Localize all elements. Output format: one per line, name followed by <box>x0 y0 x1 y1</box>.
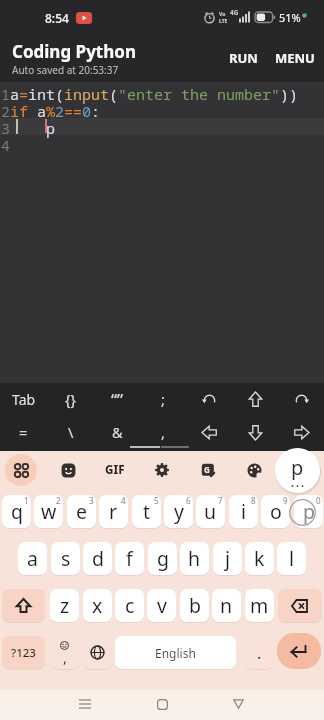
staticText: Coding Python <box>12 40 136 63</box>
staticText: 4G <box>230 8 239 17</box>
staticText: Vo <box>219 11 226 18</box>
staticText: & <box>112 422 123 442</box>
button[interactable]: t <box>132 495 161 528</box>
button[interactable]: . <box>245 636 274 669</box>
staticText: 3 <box>89 495 94 506</box>
button[interactable] <box>278 417 324 447</box>
staticText: c <box>125 592 135 619</box>
button[interactable] <box>5 454 37 486</box>
staticText: 6 <box>186 495 191 506</box>
button[interactable] <box>278 383 324 415</box>
button[interactable]: \ <box>47 417 94 447</box>
button[interactable]: RUN <box>222 46 264 70</box>
staticText: n <box>220 592 233 619</box>
button[interactable]: z <box>50 589 79 622</box>
staticText: w <box>41 498 57 525</box>
staticText: {} <box>65 389 77 409</box>
staticText: 4 <box>1 135 11 155</box>
button[interactable]: “” <box>94 383 140 415</box>
staticText: b <box>189 592 201 619</box>
staticText: s <box>61 545 71 572</box>
button[interactable]: g <box>148 542 177 575</box>
button[interactable]: n <box>212 589 241 622</box>
staticText: l <box>289 545 295 572</box>
button[interactable]: r <box>99 495 128 528</box>
button[interactable] <box>232 417 278 447</box>
button[interactable]: b <box>180 589 209 622</box>
button[interactable]: p <box>294 495 323 528</box>
staticText: u <box>204 498 217 525</box>
button[interactable]: GIF <box>100 456 130 484</box>
button[interactable]: s <box>51 542 80 575</box>
button[interactable]: x <box>83 589 112 622</box>
button[interactable] <box>148 456 176 484</box>
staticText: 1 <box>24 495 29 506</box>
button[interactable]: w <box>34 495 63 528</box>
button[interactable]: j <box>213 542 242 575</box>
button[interactable] <box>224 694 252 714</box>
button[interactable] <box>240 456 268 484</box>
staticText: “” <box>111 388 124 411</box>
button[interactable]: o <box>261 495 290 528</box>
staticText: d <box>92 545 104 572</box>
staticText: G <box>204 464 210 475</box>
button[interactable]: k <box>245 542 274 575</box>
button[interactable]: MENU <box>270 46 320 70</box>
staticText: t <box>143 498 151 525</box>
button[interactable]: {} <box>47 383 94 415</box>
button[interactable] <box>54 456 82 484</box>
button[interactable]: , <box>140 417 186 447</box>
button[interactable]: English <box>115 636 236 669</box>
button[interactable]: ?123 <box>2 636 45 669</box>
button[interactable]: i <box>229 495 258 528</box>
button[interactable]: h <box>180 542 209 575</box>
button[interactable]: l <box>277 542 306 575</box>
staticText: 51% <box>279 10 301 25</box>
button[interactable]: q <box>2 495 31 528</box>
button[interactable] <box>278 589 322 622</box>
button[interactable] <box>186 417 232 447</box>
staticText: q <box>11 498 23 525</box>
staticText: o <box>270 498 282 525</box>
button[interactable]: v <box>147 589 176 622</box>
button[interactable]: a <box>18 542 47 575</box>
button[interactable] <box>277 633 321 669</box>
staticText: a <box>27 545 38 572</box>
button[interactable]: f <box>115 542 144 575</box>
button[interactable]: y <box>164 495 193 528</box>
button[interactable]: Tab <box>0 383 47 415</box>
staticText: MENU <box>275 49 315 67</box>
button[interactable]: G <box>194 456 222 484</box>
button[interactable]: p <box>275 448 320 493</box>
button[interactable]: u <box>196 495 225 528</box>
staticText: RUN <box>229 49 258 67</box>
button[interactable]: ; <box>140 383 186 415</box>
button[interactable]: , <box>50 636 79 669</box>
button[interactable] <box>83 636 112 669</box>
staticText: g <box>157 545 169 572</box>
staticText: h <box>188 545 201 572</box>
staticText: . <box>257 642 262 664</box>
staticText: y <box>174 498 184 525</box>
button[interactable] <box>186 383 232 415</box>
staticText: , <box>161 422 165 442</box>
staticText: , <box>63 648 67 667</box>
staticText: = <box>19 422 28 442</box>
button[interactable]: c <box>115 589 144 622</box>
staticText: 2if a%2==0: <box>1 101 101 121</box>
button[interactable]: = <box>0 417 47 447</box>
staticText: \ <box>68 422 74 442</box>
button[interactable]: m <box>245 589 274 622</box>
staticText: 0 <box>316 495 321 506</box>
button[interactable] <box>71 694 99 714</box>
button[interactable]: e <box>67 495 96 528</box>
staticText: Auto saved at 20:53:37 <box>12 63 119 77</box>
button[interactable] <box>2 589 45 622</box>
staticText: e <box>76 498 87 525</box>
button[interactable]: d <box>83 542 112 575</box>
button[interactable] <box>232 383 278 415</box>
button[interactable]: & <box>94 417 140 447</box>
staticText: r <box>109 498 118 525</box>
button[interactable] <box>148 694 176 714</box>
staticText: 9 <box>283 495 288 506</box>
